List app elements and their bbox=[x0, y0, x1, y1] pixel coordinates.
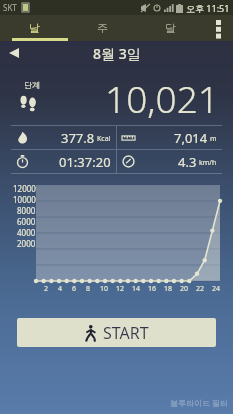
staticText: START bbox=[103, 322, 149, 344]
staticText: 16 bbox=[148, 284, 156, 294]
staticText: m bbox=[210, 134, 217, 144]
staticText: 01:37:20 bbox=[59, 153, 111, 171]
staticText: 12 bbox=[116, 284, 124, 294]
staticText: 22 bbox=[196, 284, 204, 294]
button[interactable]: More options bbox=[204, 15, 233, 41]
staticText: 7,014 bbox=[174, 129, 208, 147]
staticText: SKT bbox=[3, 2, 17, 13]
button[interactable]: 주 bbox=[68, 15, 136, 41]
staticText: 날 bbox=[29, 21, 40, 35]
staticText: km/h bbox=[199, 158, 217, 168]
staticText: 2 bbox=[44, 284, 49, 294]
button[interactable]: 달 bbox=[136, 15, 204, 41]
button[interactable]: 날 bbox=[0, 15, 68, 41]
staticText: 8000 bbox=[17, 205, 36, 216]
staticText: 달 bbox=[165, 21, 176, 35]
staticText: 4.3 bbox=[178, 153, 197, 171]
staticText: 6 bbox=[72, 284, 77, 294]
staticText: 오후 11:51 bbox=[186, 2, 230, 14]
staticText: Kcal bbox=[97, 134, 111, 144]
staticText: 18 bbox=[164, 284, 172, 294]
staticText: 블루라이드 필터 bbox=[170, 397, 229, 408]
staticText: 8월 3일 bbox=[93, 44, 141, 63]
button[interactable]: START bbox=[17, 318, 216, 347]
staticText: 377.8 bbox=[61, 129, 95, 147]
staticText: 4 bbox=[58, 284, 63, 294]
staticText: 단계 bbox=[24, 80, 40, 90]
staticText: 10000 bbox=[13, 194, 36, 205]
staticText: 4000 bbox=[17, 227, 36, 238]
staticText: 24 bbox=[212, 284, 220, 294]
staticText: 8 bbox=[86, 284, 91, 294]
staticText: 2000 bbox=[17, 238, 36, 249]
staticText: 주 bbox=[97, 21, 108, 35]
staticText: 14 bbox=[132, 284, 140, 294]
staticText: 20 bbox=[180, 284, 188, 294]
staticText: 10,021 bbox=[44, 73, 219, 119]
button[interactable]: Previous day bbox=[0, 41, 28, 65]
staticText: 6000 bbox=[17, 216, 36, 227]
staticText: 10 bbox=[100, 284, 108, 294]
staticText: 12000 bbox=[13, 183, 36, 194]
